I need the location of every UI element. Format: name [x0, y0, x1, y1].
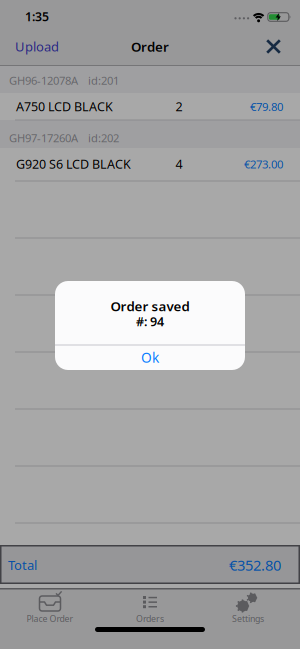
staticText: 4	[175, 155, 182, 173]
staticText: 2	[175, 98, 182, 115]
staticText: 1:35	[25, 8, 49, 25]
staticText: Settings	[232, 612, 264, 624]
staticText: G920 S6 LCD BLACK	[16, 155, 131, 173]
staticText: id:202	[88, 130, 119, 146]
staticText: Ok	[141, 348, 159, 367]
staticText: A750 LCD BLACK	[16, 98, 113, 115]
button[interactable]: A750 LCD BLACK	[0, 92, 300, 120]
staticText: €273.00	[244, 156, 283, 172]
staticText: #: 94	[136, 313, 164, 330]
staticText: Upload	[15, 38, 59, 55]
button[interactable]: Settings	[203, 589, 293, 645]
staticText: id:201	[88, 73, 119, 88]
staticText: €79.80	[250, 99, 283, 114]
staticText: €352.80	[229, 555, 281, 575]
button[interactable]: Upload	[15, 28, 95, 65]
staticText: Order	[131, 37, 169, 56]
button[interactable]: Ok	[55, 345, 245, 370]
staticText: GH96-12078A	[9, 73, 78, 88]
staticText: GH97-17260A	[9, 130, 78, 146]
button[interactable]: Orders	[105, 589, 195, 645]
staticText: Orders	[136, 612, 164, 624]
button[interactable]: G920 S6 LCD BLACK	[0, 150, 300, 178]
staticText: Order saved	[110, 297, 189, 315]
button[interactable]: Place Order	[5, 589, 95, 645]
staticText: Place Order	[26, 612, 73, 624]
staticText: Total	[8, 556, 37, 574]
button[interactable]: Close	[257, 31, 289, 61]
